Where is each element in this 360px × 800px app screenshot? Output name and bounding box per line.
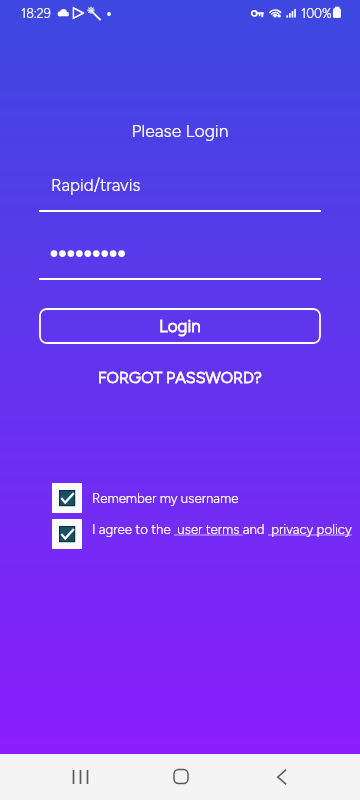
button[interactable]: Login xyxy=(39,308,321,344)
staticText: I agree to the user terms and privacy po… xyxy=(92,521,352,537)
button[interactable]: Back xyxy=(259,761,305,793)
staticText: Remember my username xyxy=(92,490,239,506)
staticText: Login xyxy=(159,316,201,336)
button[interactable]: I agree to the user terms and privacy po… xyxy=(52,519,352,549)
button[interactable]: Remember my username xyxy=(52,483,239,513)
staticText: 100% xyxy=(301,6,332,21)
button[interactable]: Recent apps xyxy=(57,761,103,793)
staticText: Please Login xyxy=(0,120,360,141)
staticText: 18:29 xyxy=(21,6,51,21)
staticText: Rapid/travis xyxy=(51,175,141,195)
button[interactable]: Home xyxy=(158,761,204,793)
staticText: FORGOT PASSWORD? xyxy=(98,368,262,387)
button[interactable]: FORGOT PASSWORD? xyxy=(0,366,360,388)
